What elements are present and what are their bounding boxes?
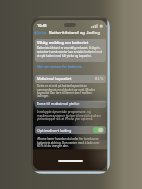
staticText: 10:45: [37, 23, 47, 28]
staticText: Innebygde dynamiske programvare- og mask…: [37, 110, 103, 121]
staticText: Batteriets tilstand er vesentlig reduser…: [37, 46, 104, 58]
staticText: Evne til maksimal ytelse: [37, 101, 80, 106]
button[interactable]: Viktig melding om batteriet: [35, 39, 106, 62]
button[interactable]: Maksimal kapasitet: [35, 75, 106, 83]
button[interactable]: Mer om service for batteriet...: [37, 64, 85, 69]
staticText: Dette er et mål på batterikapasiteten sa…: [37, 84, 103, 98]
button[interactable]: Geba: [34, 30, 47, 36]
staticText: 83 %: [95, 76, 104, 81]
staticText: Batteritilstand og -lading: [49, 30, 101, 36]
button[interactable]: Optimalisert lading, på: [93, 127, 104, 133]
staticText: Viktig melding om batteriet: [37, 40, 89, 45]
staticText: Mer om service for batteriet...: [37, 64, 85, 69]
staticText: Geba: [36, 30, 47, 36]
button[interactable]: Evne til maksimal ytelse: [35, 100, 106, 108]
staticText: Maksimal kapasitet: [37, 76, 72, 81]
staticText: Optimalisert lading: [37, 128, 72, 133]
staticText: iPhone lærer hvordan du lader for å redu…: [37, 137, 103, 148]
button[interactable]: Optimalisert lading: [35, 126, 106, 134]
